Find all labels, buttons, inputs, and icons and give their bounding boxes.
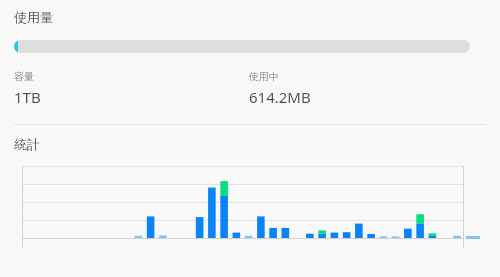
button[interactable]: 容量 [14, 70, 249, 107]
staticText: 使用中 [249, 70, 279, 83]
staticText: 614.2MB [249, 87, 311, 107]
staticText: 1TB [14, 87, 41, 107]
staticText: 容量 [14, 70, 34, 83]
staticText: 使用量 [14, 9, 53, 25]
button[interactable]: Usage statistics chart [0, 162, 500, 262]
button[interactable] [14, 40, 470, 53]
staticText: 統計 [14, 136, 40, 152]
button[interactable]: 使用中 [249, 70, 449, 107]
